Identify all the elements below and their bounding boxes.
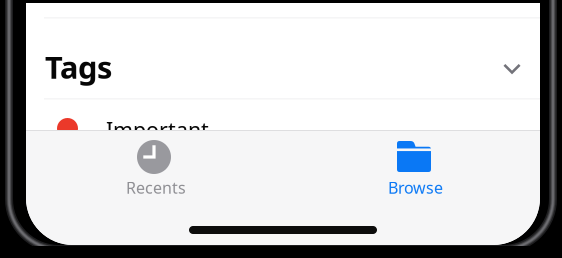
button[interactable]: Tags — [26, 18, 540, 98]
button[interactable]: Browse — [283, 133, 540, 199]
staticText: Recents — [126, 177, 186, 198]
staticText: Important — [106, 115, 209, 144]
staticText: Browse — [388, 177, 443, 198]
button[interactable]: Important — [26, 99, 540, 145]
staticText: Tags — [45, 46, 112, 87]
button[interactable]: Recents — [26, 133, 283, 199]
